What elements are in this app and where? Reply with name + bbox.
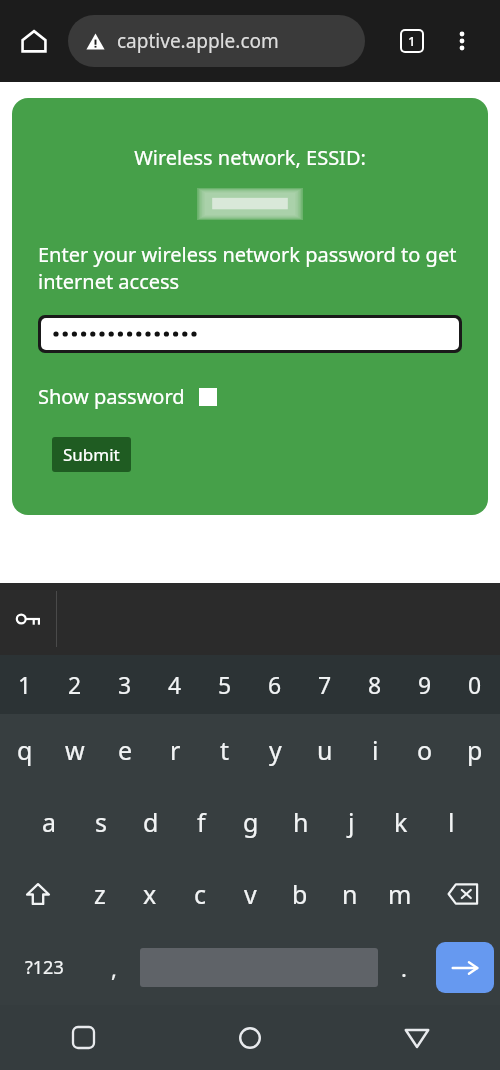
- button[interactable]: b: [275, 858, 325, 930]
- staticText: r: [170, 733, 181, 767]
- button[interactable]: Home: [166, 1005, 333, 1070]
- staticText: l: [448, 805, 455, 839]
- button[interactable]: x: [125, 858, 175, 930]
- staticText: z: [94, 877, 106, 911]
- staticText: e: [118, 733, 133, 767]
- staticText: b: [292, 877, 308, 911]
- staticText: Show password: [38, 383, 185, 410]
- staticText: captive.apple.com: [117, 28, 279, 54]
- staticText: ?123: [25, 955, 64, 980]
- staticText: w: [65, 733, 85, 767]
- button[interactable]: 4: [150, 655, 200, 714]
- staticText: k: [394, 805, 408, 839]
- button[interactable]: Home: [10, 17, 58, 65]
- button[interactable]: ?123: [0, 930, 88, 1005]
- button[interactable]: k: [376, 786, 426, 858]
- staticText: Enter your wireless network password to …: [38, 241, 462, 295]
- button[interactable]: p: [450, 714, 500, 786]
- button[interactable]: u: [300, 714, 350, 786]
- staticText: ,: [111, 953, 117, 983]
- button[interactable]: 3: [100, 655, 150, 714]
- button[interactable]: 7: [300, 655, 350, 714]
- staticText: 6: [268, 669, 282, 700]
- button[interactable]: r: [150, 714, 200, 786]
- button[interactable]: a: [24, 786, 75, 858]
- button[interactable]: n: [325, 858, 375, 930]
- staticText: Wireless network, ESSID:: [12, 144, 488, 171]
- button[interactable]: q: [0, 714, 50, 786]
- button[interactable]: Show password: [38, 383, 217, 410]
- button[interactable]: 8: [350, 655, 400, 714]
- button[interactable]: Submit: [52, 437, 131, 472]
- staticText: x: [143, 877, 157, 911]
- staticText: y: [269, 733, 282, 767]
- button[interactable]: f: [176, 786, 226, 858]
- staticText: a: [42, 805, 57, 839]
- button[interactable]: Enter: [436, 942, 494, 993]
- button[interactable]: Recent apps: [0, 1005, 166, 1070]
- button[interactable]: [41, 318, 459, 350]
- button[interactable]: w: [50, 714, 100, 786]
- staticText: i: [372, 733, 379, 767]
- staticText: 5: [218, 669, 232, 700]
- staticText: t: [220, 733, 230, 767]
- staticText: c: [194, 877, 207, 911]
- button[interactable]: v: [225, 858, 275, 930]
- staticText: Submit: [63, 443, 120, 466]
- button[interactable]: c: [175, 858, 225, 930]
- staticText: u: [317, 733, 333, 767]
- staticText: 8: [368, 669, 382, 700]
- button[interactable]: .: [378, 930, 430, 1005]
- button[interactable]: g: [226, 786, 276, 858]
- staticText: 1: [18, 669, 32, 700]
- button[interactable]: t: [200, 714, 250, 786]
- staticText: 3: [118, 669, 132, 700]
- staticText: 0: [468, 669, 482, 700]
- staticText: 4: [168, 669, 182, 700]
- staticText: d: [143, 805, 159, 839]
- button[interactable]: Back: [333, 1005, 500, 1070]
- button[interactable]: More options: [438, 17, 486, 65]
- staticText: g: [243, 805, 259, 839]
- button[interactable]: e: [100, 714, 150, 786]
- button[interactable]: 9: [400, 655, 450, 714]
- staticText: 7: [318, 669, 332, 700]
- button[interactable]: y: [250, 714, 300, 786]
- staticText: v: [244, 877, 257, 911]
- staticText: q: [17, 733, 33, 767]
- button[interactable]: 1: [0, 655, 50, 714]
- button[interactable]: h: [276, 786, 326, 858]
- button[interactable]: s: [75, 786, 126, 858]
- button[interactable]: z: [75, 858, 125, 930]
- button[interactable]: 2: [50, 655, 100, 714]
- button[interactable]: d: [126, 786, 176, 858]
- button[interactable]: Tabs: [388, 17, 436, 65]
- staticText: 9: [418, 669, 432, 700]
- staticText: j: [348, 805, 355, 839]
- button[interactable]: Shift: [0, 858, 75, 930]
- button[interactable]: m: [375, 858, 425, 930]
- button[interactable]: Backspace: [425, 858, 500, 930]
- button[interactable]: 5: [200, 655, 250, 714]
- staticText: 2: [68, 669, 82, 700]
- staticText: f: [197, 805, 206, 839]
- staticText: p: [467, 733, 483, 767]
- button[interactable]: l: [426, 786, 476, 858]
- staticText: h: [293, 805, 309, 839]
- button[interactable]: captive.apple.com: [68, 15, 365, 67]
- button[interactable]: Passwords: [0, 583, 56, 655]
- button[interactable]: ,: [88, 930, 140, 1005]
- staticText: m: [388, 877, 412, 911]
- button[interactable]: i: [350, 714, 400, 786]
- button[interactable]: o: [400, 714, 450, 786]
- staticText: o: [417, 733, 433, 767]
- staticText: .: [401, 953, 407, 983]
- staticText: s: [95, 805, 107, 839]
- staticText: n: [342, 877, 358, 911]
- button[interactable]: 6: [250, 655, 300, 714]
- button[interactable]: j: [326, 786, 376, 858]
- button[interactable]: 0: [450, 655, 500, 714]
- staticText: 1: [408, 32, 416, 50]
